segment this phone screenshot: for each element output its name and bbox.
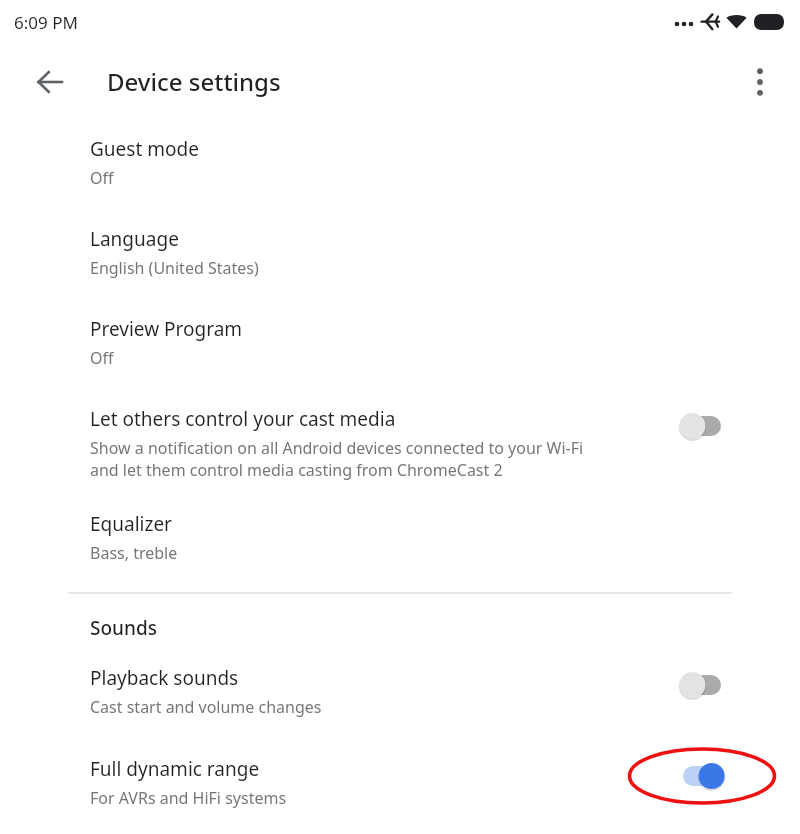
staticText: Bass, treble bbox=[90, 542, 178, 564]
staticText: Language bbox=[90, 226, 179, 252]
button[interactable]: Let others control your cast media bbox=[0, 369, 800, 481]
staticText: English (United States) bbox=[90, 257, 259, 279]
button[interactable]: More options bbox=[736, 58, 784, 106]
button[interactable]: Off bbox=[628, 397, 776, 455]
staticText: Off bbox=[90, 167, 114, 189]
other: Off bbox=[674, 667, 730, 703]
button[interactable]: Equalizer bbox=[0, 481, 800, 564]
button[interactable]: Language bbox=[0, 189, 800, 279]
staticText: Show a notification on all Android devic… bbox=[90, 437, 584, 459]
staticText: Equalizer bbox=[90, 511, 172, 537]
staticText: Device settings bbox=[107, 65, 281, 98]
staticText: Full dynamic range bbox=[90, 756, 260, 782]
button[interactable]: Back bbox=[26, 58, 74, 106]
staticText: 6:09 PM bbox=[14, 11, 78, 34]
staticText: Sounds bbox=[90, 615, 157, 641]
staticText: Playback sounds bbox=[90, 665, 239, 691]
staticText: For AVRs and HiFi systems bbox=[90, 787, 287, 809]
staticText: and let them control media casting from … bbox=[90, 459, 503, 481]
button[interactable]: Preview Program bbox=[0, 279, 800, 369]
staticText: Let others control your cast media bbox=[90, 406, 396, 432]
button[interactable]: On bbox=[628, 747, 776, 805]
other: On bbox=[674, 758, 730, 794]
staticText: Cast start and volume changes bbox=[90, 696, 322, 718]
button[interactable]: Full dynamic range bbox=[0, 723, 800, 814]
staticText: Guest mode bbox=[90, 136, 199, 162]
other: Off bbox=[674, 408, 730, 444]
staticText: Preview Program bbox=[90, 316, 243, 342]
staticText: Off bbox=[90, 347, 114, 369]
button[interactable]: Guest mode bbox=[0, 119, 800, 189]
button[interactable]: Playback sounds bbox=[0, 641, 800, 723]
button[interactable]: Off bbox=[628, 656, 776, 714]
